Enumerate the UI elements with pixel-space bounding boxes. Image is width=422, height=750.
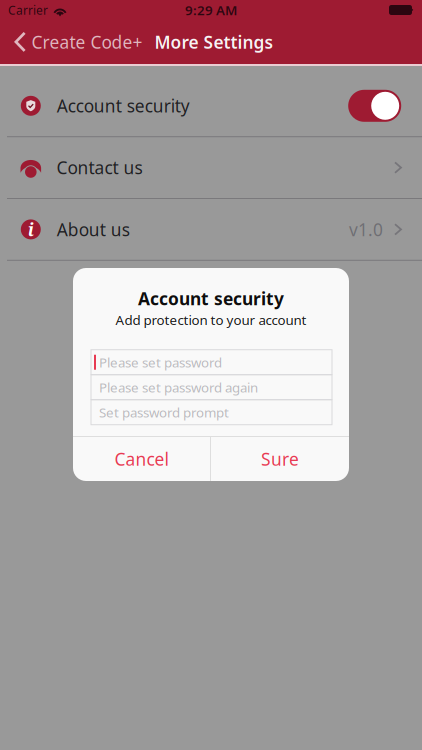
staticText: Sure <box>261 447 299 470</box>
button[interactable]: Sure <box>211 437 349 481</box>
staticText: v1.0 <box>349 218 383 241</box>
staticText: Cancel <box>114 447 168 470</box>
staticText: Carrier <box>8 2 48 18</box>
button[interactable]: i <box>0 199 422 260</box>
staticText: Contact us <box>57 156 143 179</box>
staticText: Set password prompt <box>99 403 229 421</box>
staticText: Account security <box>57 94 190 117</box>
button[interactable]: Create Code+ <box>0 20 154 64</box>
staticText: Add protection to your account <box>115 311 306 329</box>
staticText: More Settings <box>154 30 273 53</box>
button[interactable]: Account security toggle <box>348 90 401 122</box>
staticText: 9:29 AM <box>185 1 237 19</box>
staticText: Account security <box>138 287 284 310</box>
button[interactable]: Contact us <box>0 137 422 198</box>
staticText: Create Code+ <box>31 30 142 53</box>
button[interactable]: Cancel <box>73 437 210 481</box>
staticText: Please set password again <box>99 378 258 396</box>
staticText: Please set password <box>99 353 222 371</box>
staticText: i <box>28 218 34 241</box>
staticText: About us <box>57 218 130 241</box>
